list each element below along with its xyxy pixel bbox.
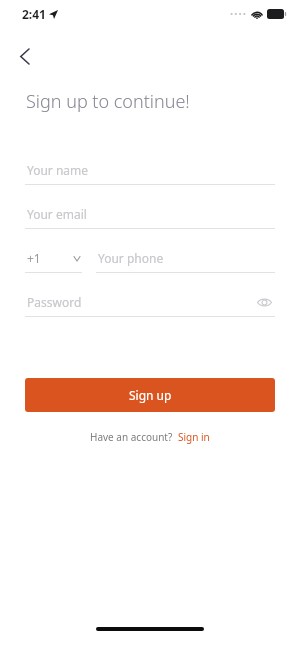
button[interactable]: Your name	[25, 156, 275, 184]
button[interactable]: Sign in	[178, 430, 210, 444]
button[interactable]: Password	[25, 288, 275, 316]
staticText: 2:41	[22, 6, 46, 22]
button[interactable]: Back	[8, 40, 40, 72]
staticText: +1	[27, 250, 41, 266]
staticText: Sign up to continue!	[26, 89, 190, 114]
button[interactable]: +1	[25, 244, 82, 272]
staticText: Password	[27, 294, 82, 310]
staticText: Your name	[27, 162, 89, 178]
button[interactable]: Your phone	[96, 244, 275, 272]
button[interactable]: Show password	[253, 291, 275, 313]
staticText: Your phone	[98, 250, 164, 266]
button[interactable]: Sign up	[25, 378, 275, 412]
staticText: Your email	[27, 206, 87, 222]
staticText: Sign in	[178, 430, 210, 444]
staticText: Sign up	[129, 387, 172, 403]
staticText: Have an account?	[90, 430, 173, 444]
button[interactable]: Your email	[25, 200, 275, 228]
